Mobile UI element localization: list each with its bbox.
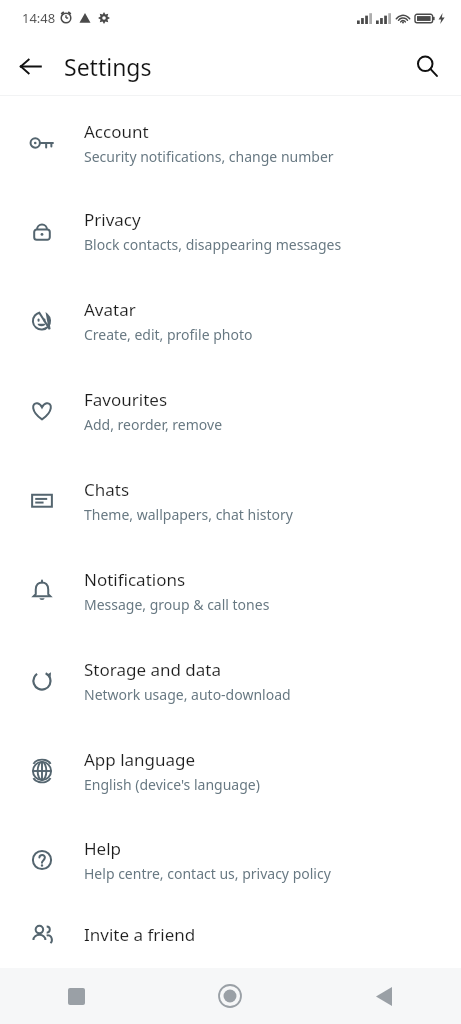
staticText: Help centre, contact us, privacy policy [84, 864, 331, 883]
staticText: App language [84, 748, 196, 771]
staticText: Message, group & call tones [84, 595, 270, 614]
staticText: English (device's language) [84, 775, 260, 794]
staticText: 14:48 [22, 9, 56, 27]
staticText: Invite a friend [84, 923, 196, 946]
button[interactable]: Search [405, 44, 449, 88]
staticText: Privacy [84, 208, 141, 231]
staticText: Chats [84, 478, 130, 501]
staticText: Network usage, auto-download [84, 685, 291, 704]
staticText: Theme, wallpapers, chat history [84, 505, 293, 524]
staticText: Security notifications, change number [84, 147, 334, 166]
staticText: Add, reorder, remove [84, 415, 223, 434]
button[interactable]: Invite a friend [0, 904, 461, 964]
staticText: Block contacts, disappearing messages [84, 235, 342, 254]
button[interactable]: Back [307, 968, 461, 1024]
button[interactable]: Notifications [0, 546, 461, 636]
staticText: Favourites [84, 388, 168, 411]
staticText: Help [84, 837, 122, 860]
button[interactable]: Back [8, 44, 52, 88]
staticText: Storage and data [84, 658, 222, 681]
button[interactable]: Favourites [0, 366, 461, 456]
staticText: Settings [64, 51, 152, 82]
button[interactable]: App language [0, 726, 461, 815]
button[interactable]: Privacy [0, 186, 461, 276]
staticText: Notifications [84, 568, 186, 591]
button[interactable]: Help [0, 815, 461, 904]
button[interactable]: Recent apps [0, 968, 153, 1024]
staticText: Account [84, 120, 149, 143]
button[interactable]: Home [153, 968, 307, 1024]
button[interactable]: Account [0, 100, 461, 186]
button[interactable]: Avatar [0, 276, 461, 366]
button[interactable]: Storage and data [0, 636, 461, 726]
button[interactable]: Chats [0, 456, 461, 546]
staticText: Create, edit, profile photo [84, 325, 253, 344]
staticText: Avatar [84, 298, 136, 321]
